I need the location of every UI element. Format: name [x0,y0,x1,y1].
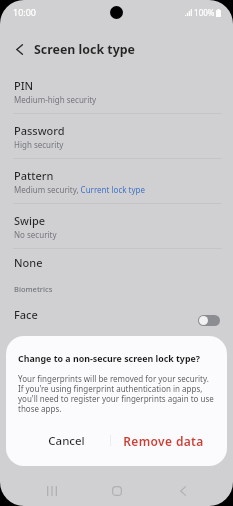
staticText: Medium-high security [14,94,97,105]
staticText: Cancel [48,433,85,449]
button[interactable]: Password [0,114,233,159]
button[interactable]: Home [102,476,132,506]
staticText: Medium security, Current lock type [14,184,145,195]
staticText: Face [14,307,38,322]
staticText: Remove data [123,433,204,449]
button[interactable]: None [0,249,233,276]
staticText: Pattern [14,168,54,183]
button[interactable]: Pattern [0,159,233,204]
staticText: Password [14,123,65,138]
staticText: Change to a non-secure screen lock type? [18,353,201,365]
staticText: 10:00 [13,6,37,18]
button[interactable]: Face unlock toggle [198,315,220,326]
staticText: High security [14,139,64,150]
button[interactable]: Remove data [111,427,227,454]
button[interactable]: Cancel [6,427,110,454]
staticText: Biometrics [14,284,53,294]
button[interactable]: Swipe [0,204,233,249]
staticText: Your fingerprints will be removed for yo… [18,373,214,414]
button[interactable]: Navigate up [0,30,34,69]
button[interactable]: Face [0,297,233,331]
button[interactable]: PIN [0,69,233,114]
staticText: PIN [14,78,34,93]
staticText: Screen lock type [34,41,135,58]
staticText: Swipe [14,213,46,228]
staticText: No security [14,229,57,240]
staticText: None [14,255,43,270]
button[interactable]: Recent apps [37,476,67,506]
staticText: 100% [192,7,215,18]
button[interactable]: Back [168,476,198,506]
